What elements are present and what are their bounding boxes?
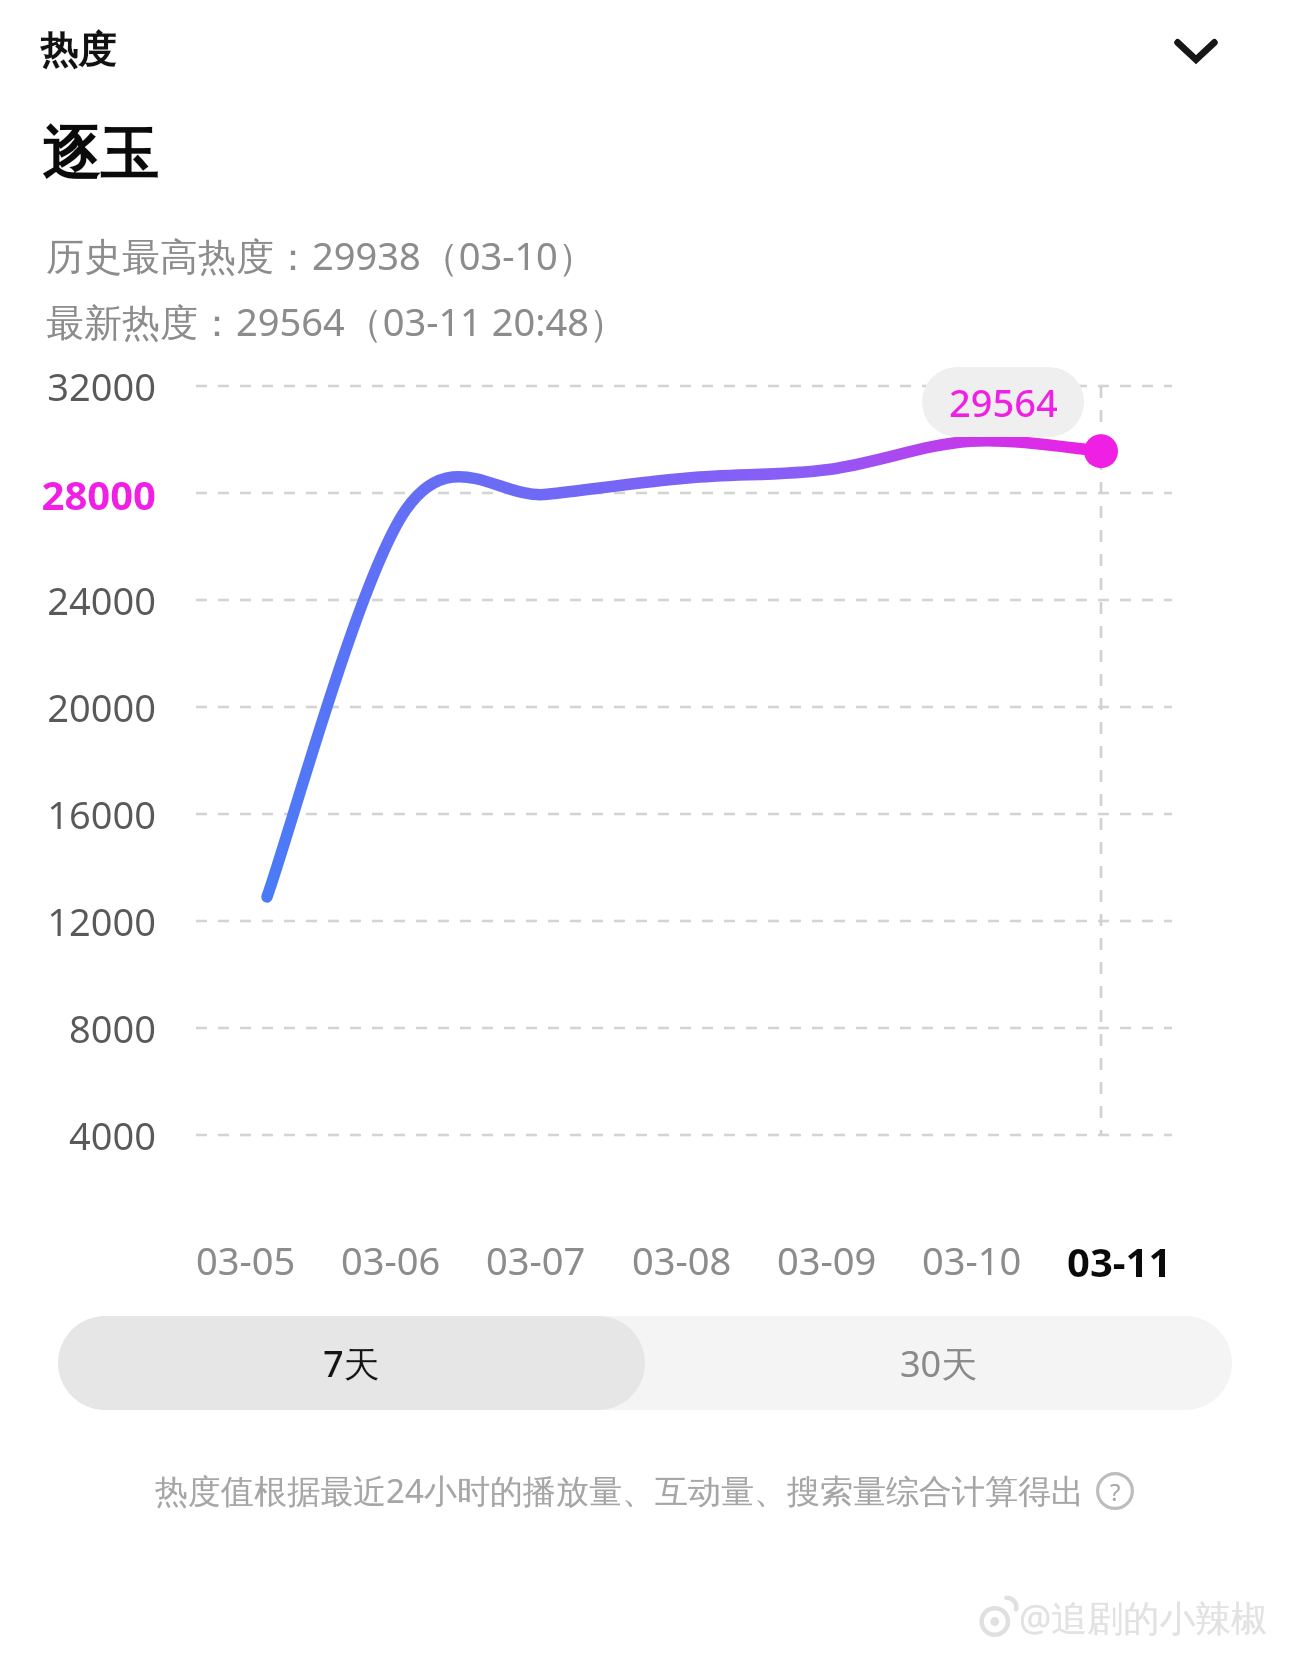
staticText: 03-10 (922, 1234, 1022, 1286)
staticText: 逐玉 (42, 118, 158, 191)
button[interactable]: Collapse (1164, 18, 1228, 82)
staticText: 03-05 (196, 1234, 296, 1286)
staticText: @追剧的小辣椒 (1019, 1593, 1268, 1642)
staticText: 4000 (0, 1109, 156, 1161)
staticText: 03-08 (632, 1234, 732, 1286)
staticText: 30天 (900, 1339, 978, 1388)
staticText: 28000 (0, 467, 156, 521)
staticText: 03-07 (486, 1234, 586, 1286)
staticText: 20000 (0, 681, 156, 733)
staticText: 8000 (0, 1002, 156, 1054)
staticText: 16000 (0, 788, 156, 840)
staticText: 热度值根据最近24小时的播放量、互动量、搜索量综合计算得出 (155, 1468, 1084, 1513)
staticText: 03-11 (1067, 1234, 1172, 1288)
staticText: 32000 (0, 360, 156, 412)
staticText: 29564 (949, 376, 1058, 428)
staticText: 热度 (40, 26, 116, 74)
button[interactable]: 7天 (58, 1316, 645, 1410)
staticText: ? (1110, 1475, 1121, 1508)
staticText: 24000 (0, 574, 156, 626)
button[interactable]: 30天 (645, 1316, 1232, 1410)
staticText: 03-09 (777, 1234, 877, 1286)
staticText: 12000 (0, 895, 156, 947)
staticText: 03-06 (341, 1234, 441, 1286)
staticText: 最新热度：29564（03-11 20:48） (46, 295, 627, 347)
staticText: 7天 (323, 1339, 380, 1388)
staticText: 历史最高热度：29938（03-10） (46, 229, 596, 281)
button[interactable]: Help (1094, 1470, 1136, 1512)
